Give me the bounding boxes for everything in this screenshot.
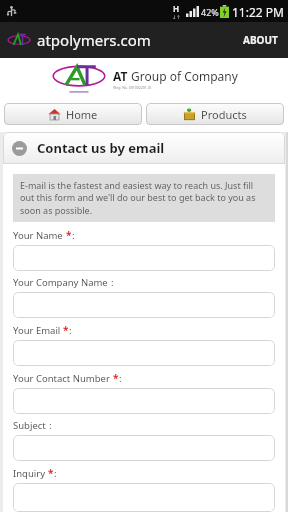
staticText: :: [72, 229, 75, 242]
staticText: ↓↑: [172, 14, 181, 20]
staticText: ABOUT: [243, 33, 278, 47]
staticText: Contact us by email: [37, 139, 165, 157]
other: Collapse section: [12, 141, 27, 156]
staticText: *: [48, 466, 54, 480]
staticText: :: [49, 419, 52, 432]
button[interactable]: Home: [4, 103, 142, 125]
staticText: Home: [66, 107, 98, 122]
button[interactable]: [13, 435, 275, 461]
staticText: :: [54, 467, 57, 480]
staticText: Inquiry: [13, 467, 48, 480]
button[interactable]: [13, 245, 275, 271]
staticText: Group of Company: [131, 68, 238, 84]
staticText: atpolymers.com: [37, 30, 151, 50]
staticText: :: [111, 276, 114, 289]
staticText: AT: [113, 68, 128, 84]
staticText: Subject: [13, 419, 49, 432]
staticText: H: [173, 3, 180, 14]
staticText: *: [66, 228, 72, 242]
button[interactable]: [13, 340, 275, 366]
button[interactable]: Products: [146, 103, 284, 125]
staticText: Your Name: [13, 229, 66, 242]
staticText: (Reg. No. 001002201-X): [113, 85, 152, 90]
button[interactable]: [13, 483, 275, 512]
staticText: Your Email: [13, 324, 63, 337]
button[interactable]: [13, 388, 275, 414]
staticText: *: [63, 323, 69, 337]
button[interactable]: [13, 292, 275, 318]
staticText: E-mail is the fastest and easiest way to…: [20, 179, 268, 217]
staticText: *: [113, 371, 119, 385]
staticText: 11:22 PM: [232, 4, 284, 20]
staticText: Products: [201, 107, 247, 122]
staticText: Your Contact Number: [13, 372, 113, 385]
button[interactable]: ABOUT: [233, 25, 288, 55]
staticText: 42%: [201, 6, 219, 18]
button[interactable]: Collapse section: [3, 132, 285, 164]
staticText: :: [69, 324, 72, 337]
staticText: Your Company Name: [13, 276, 111, 289]
staticText: :: [119, 372, 122, 385]
